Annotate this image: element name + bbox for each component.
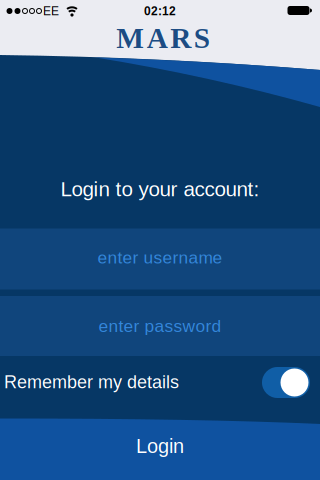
button[interactable]: enter username xyxy=(0,228,320,289)
button[interactable]: enter password xyxy=(0,296,320,356)
staticText: 02:12 xyxy=(144,4,176,18)
button[interactable]: Login xyxy=(0,418,320,480)
staticText: EE xyxy=(43,4,59,18)
staticText: Login to your account: xyxy=(60,177,259,201)
staticText: enter username xyxy=(97,248,222,267)
button[interactable]: Remember my details xyxy=(262,367,310,398)
staticText: enter password xyxy=(98,316,221,336)
staticText: Login xyxy=(136,435,184,457)
staticText: Remember my details xyxy=(4,372,179,392)
staticText: MARS xyxy=(116,22,210,54)
